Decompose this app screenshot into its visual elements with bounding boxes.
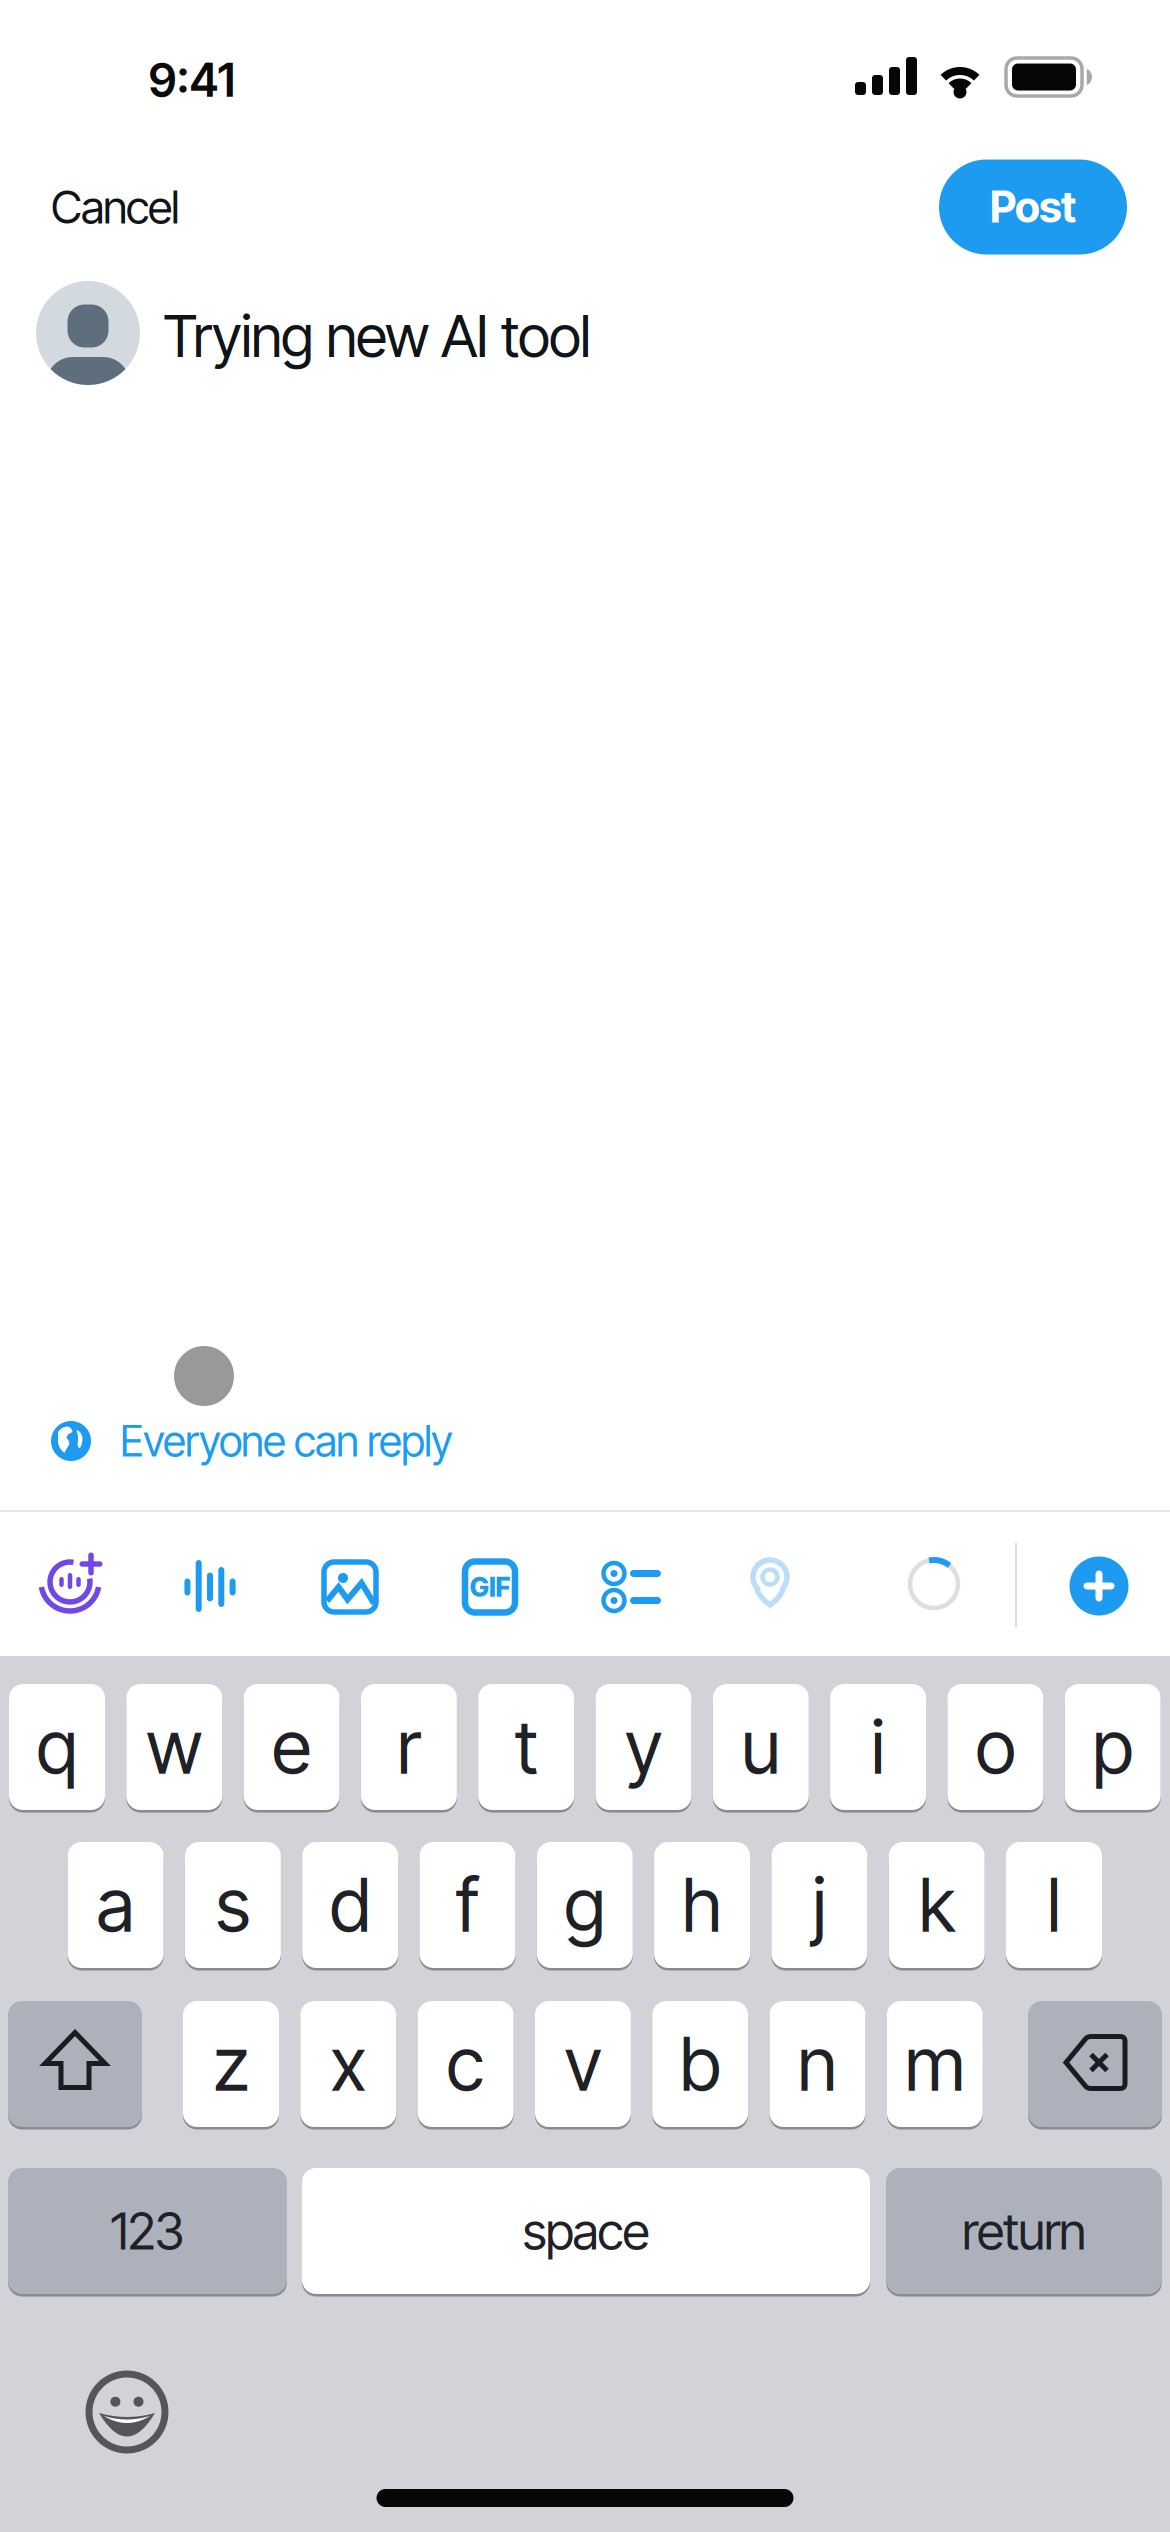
button[interactable]: GIF — [446, 1543, 534, 1631]
button[interactable] — [1028, 1999, 1162, 2128]
button[interactable]: d — [302, 1840, 398, 1969]
staticText: h — [682, 1861, 722, 1949]
button[interactable]: u — [713, 1682, 809, 1811]
button[interactable] — [26, 1530, 114, 1618]
button[interactable]: t — [478, 1682, 574, 1811]
staticText: l — [1047, 1861, 1061, 1949]
button[interactable] — [8, 1999, 142, 2128]
staticText: Trying new AI tool — [163, 301, 591, 371]
button[interactable]: z — [183, 1999, 279, 2128]
button[interactable]: Post — [939, 159, 1127, 254]
staticText: Cancel — [51, 180, 180, 234]
staticText: p — [1092, 1703, 1133, 1791]
button[interactable]: l — [1006, 1840, 1102, 1969]
staticText: w — [146, 1703, 202, 1791]
staticText: o — [975, 1703, 1015, 1791]
staticText: y — [625, 1703, 662, 1791]
button[interactable]: g — [537, 1840, 633, 1969]
staticText: a — [97, 1861, 135, 1949]
button[interactable]: Everyone can reply — [49, 1409, 829, 1473]
staticText: t — [515, 1703, 538, 1791]
staticText: k — [919, 1861, 955, 1949]
staticText: q — [36, 1703, 77, 1791]
button[interactable]: f — [419, 1840, 515, 1969]
staticText: z — [213, 2020, 249, 2108]
button[interactable]: Cancel — [51, 167, 351, 247]
button[interactable] — [166, 1542, 254, 1630]
staticText: c — [447, 2020, 485, 2108]
button[interactable]: w — [126, 1682, 222, 1811]
button[interactable]: return — [886, 2166, 1162, 2295]
button[interactable] — [1055, 1542, 1143, 1630]
staticText: 9:41 — [148, 52, 235, 108]
button[interactable]: m — [887, 1999, 983, 2128]
staticText: g — [564, 1861, 605, 1949]
button[interactable]: s — [185, 1840, 281, 1969]
staticText: b — [680, 2020, 721, 2108]
button[interactable] — [726, 1539, 814, 1627]
button[interactable]: n — [769, 1999, 865, 2128]
button[interactable] — [586, 1542, 674, 1630]
staticText: d — [330, 1861, 371, 1949]
button[interactable]: k — [889, 1840, 985, 1969]
button[interactable]: y — [595, 1682, 691, 1811]
button[interactable]: a — [68, 1840, 164, 1969]
button[interactable]: v — [535, 1999, 631, 2128]
staticText: n — [797, 2020, 837, 2108]
button[interactable]: h — [654, 1840, 750, 1969]
staticText: space — [522, 2200, 649, 2262]
button[interactable]: j — [771, 1840, 867, 1969]
button[interactable] — [83, 2368, 171, 2456]
button[interactable]: e — [244, 1682, 340, 1811]
staticText: 123 — [110, 2200, 184, 2262]
staticText: return — [962, 2200, 1086, 2262]
staticText: u — [741, 1703, 780, 1791]
button[interactable] — [306, 1542, 394, 1630]
button[interactable]: x — [300, 1999, 396, 2128]
staticText: s — [215, 1861, 250, 1949]
staticText: Everyone can reply — [120, 1415, 453, 1467]
staticText: i — [871, 1703, 885, 1791]
staticText: Post — [990, 181, 1076, 233]
button[interactable]: p — [1065, 1682, 1161, 1811]
button[interactable]: r — [361, 1682, 457, 1811]
staticText: GIF — [469, 1571, 510, 1603]
staticText: x — [330, 2020, 366, 2108]
button[interactable]: 123 — [8, 2166, 287, 2295]
staticText: m — [905, 2020, 965, 2108]
staticText: j — [812, 1861, 826, 1949]
button[interactable]: c — [418, 1999, 514, 2128]
button[interactable]: b — [652, 1999, 748, 2128]
button[interactable]: i — [830, 1682, 926, 1811]
button[interactable]: q — [9, 1682, 105, 1811]
button[interactable]: space — [302, 2166, 870, 2295]
staticText: e — [272, 1703, 311, 1791]
staticText: f — [456, 1861, 479, 1949]
staticText: v — [564, 2020, 601, 2108]
button[interactable]: o — [947, 1682, 1043, 1811]
staticText: r — [397, 1703, 421, 1791]
